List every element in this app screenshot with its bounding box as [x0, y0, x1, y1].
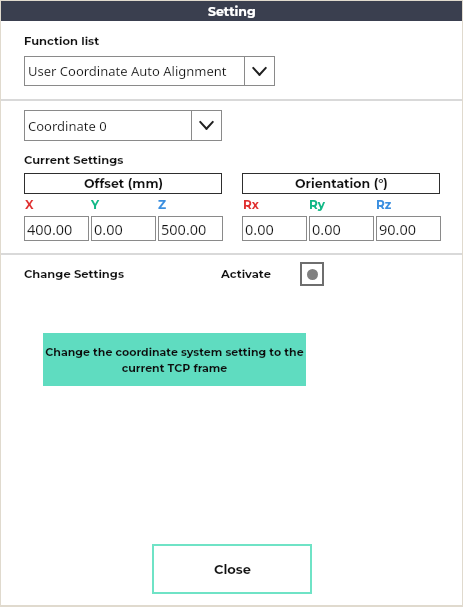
button[interactable]: Change the coordinate system setting to …	[43, 333, 306, 386]
staticText: 400.00	[27, 219, 73, 239]
button[interactable]: 400.00	[24, 216, 89, 241]
staticText: Y	[91, 197, 100, 212]
button[interactable]: User Coordinate Auto Alignment	[24, 56, 275, 86]
staticText: 0.00	[94, 219, 123, 239]
button[interactable]: 0.00	[91, 216, 156, 241]
staticText: Current Settings	[24, 153, 124, 167]
staticText: Setting	[208, 4, 256, 19]
button[interactable]: 90.00	[376, 216, 441, 241]
button[interactable]: Coordinate 0	[24, 110, 222, 141]
button[interactable]: Close	[152, 544, 312, 594]
staticText: Change the coordinate system setting to …	[44, 345, 305, 374]
staticText: X	[25, 197, 34, 212]
staticText: 90.00	[379, 219, 417, 239]
staticText: Rx	[243, 197, 259, 212]
button[interactable]: 0.00	[309, 216, 374, 241]
staticText: Ry	[309, 197, 325, 212]
staticText: Coordinate 0	[28, 117, 107, 135]
staticText: Change Settings	[24, 267, 124, 281]
staticText: Rz	[376, 197, 392, 212]
button[interactable]: 0.00	[242, 216, 307, 241]
staticText: 0.00	[312, 219, 341, 239]
staticText: 0.00	[245, 219, 274, 239]
staticText: Close	[214, 561, 251, 577]
staticText: Activate	[221, 267, 271, 281]
staticText: Orientation (°)	[295, 176, 388, 191]
button[interactable]: Activate	[300, 262, 324, 286]
staticText: Offset (mm)	[84, 176, 163, 191]
staticText: 500.00	[161, 219, 207, 239]
staticText: User Coordinate Auto Alignment	[28, 62, 227, 80]
staticText: Z	[158, 197, 167, 212]
button[interactable]: 500.00	[158, 216, 223, 241]
staticText: Function list	[24, 34, 100, 48]
